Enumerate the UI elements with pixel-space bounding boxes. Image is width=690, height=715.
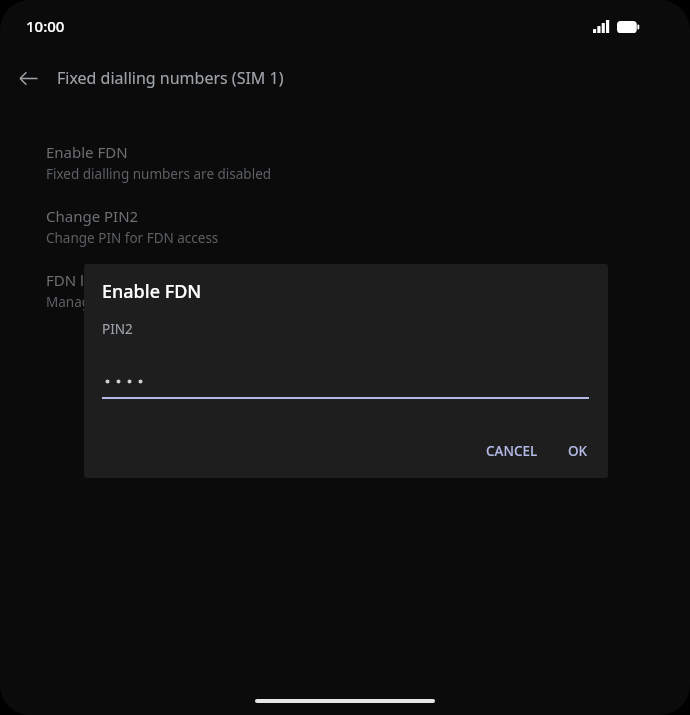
staticText: 10:00 xyxy=(26,16,65,36)
staticText: Change PIN for FDN access xyxy=(46,229,219,247)
staticText: FDN list xyxy=(46,270,101,290)
staticText: OK xyxy=(568,442,588,460)
staticText: Enable FDN xyxy=(102,279,202,304)
button[interactable]: OK xyxy=(557,434,599,468)
button[interactable]: PIN2 entry field xyxy=(102,376,589,399)
staticText: Fixed dialling numbers (SIM 1) xyxy=(57,67,284,89)
button[interactable]: CANCEL xyxy=(475,434,549,468)
button[interactable]: FDN list xyxy=(0,259,690,323)
staticText: Fixed dialling numbers are disabled xyxy=(46,165,272,183)
staticText: Enable FDN xyxy=(46,142,128,162)
staticText: PIN2 xyxy=(102,320,133,338)
staticText: CANCEL xyxy=(486,442,538,460)
button[interactable]: Enable FDN xyxy=(0,131,690,195)
staticText: Change PIN2 xyxy=(46,206,139,226)
button[interactable]: Back xyxy=(9,59,47,97)
button[interactable]: Change PIN2 xyxy=(0,195,690,259)
staticText: Manage phone number list xyxy=(46,293,219,311)
